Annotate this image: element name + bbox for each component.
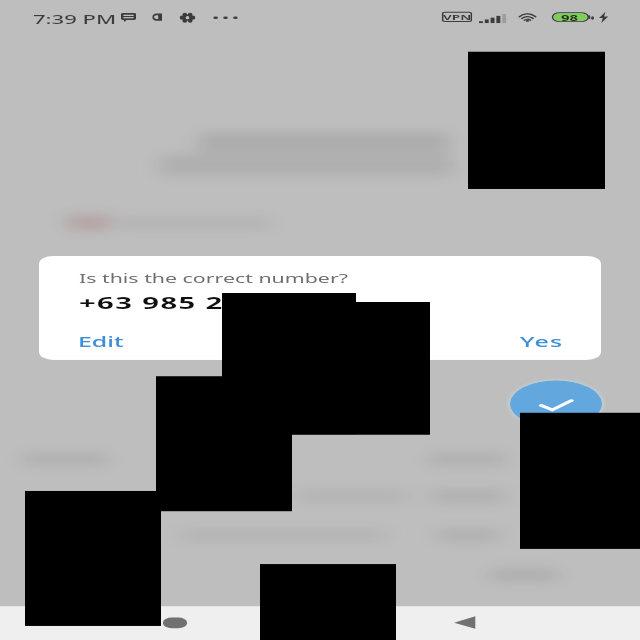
button[interactable]: Confirm <box>504 375 608 433</box>
staticText: VPN <box>443 12 472 22</box>
button[interactable]: Edit <box>66 327 136 356</box>
button[interactable]: Recents <box>163 617 187 628</box>
staticText: Edit <box>78 332 124 351</box>
button[interactable]: Yes <box>508 327 576 356</box>
staticText: 7:39 PM <box>33 10 117 27</box>
staticText: Is this the correct number? <box>79 270 348 287</box>
staticText: +63 985 27 <box>79 291 242 314</box>
button[interactable]: Back <box>446 606 482 640</box>
staticText: Yes <box>520 332 564 351</box>
staticText: 98 <box>561 12 579 22</box>
